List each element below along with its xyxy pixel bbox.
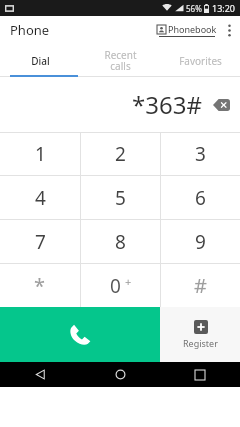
button[interactable]: 0 <box>81 264 160 307</box>
staticText: 4 <box>35 185 46 211</box>
button[interactable]: Home <box>80 362 160 387</box>
staticText: # <box>194 272 207 299</box>
staticText: 0 <box>110 273 121 299</box>
staticText: 7 <box>35 229 46 255</box>
staticText: 56% <box>186 3 202 14</box>
button[interactable]: Backspace <box>210 94 232 116</box>
button[interactable]: 9 <box>161 220 240 263</box>
button[interactable]: Phonebook <box>157 23 217 37</box>
staticText: 9 <box>195 229 206 255</box>
staticText: * <box>34 272 46 299</box>
button[interactable]: 7 <box>0 220 80 263</box>
button[interactable]: 3 <box>161 133 240 175</box>
button[interactable]: 1 <box>0 133 80 175</box>
button[interactable]: Recent apps <box>160 362 240 387</box>
button[interactable]: 8 <box>81 220 160 263</box>
button[interactable]: More options <box>222 18 236 42</box>
staticText: 5 <box>115 185 126 211</box>
button[interactable]: # <box>161 264 240 307</box>
button[interactable]: 5 <box>81 176 160 219</box>
button[interactable]: Dial <box>0 44 80 77</box>
button[interactable]: 4 <box>0 176 80 219</box>
button[interactable]: Register <box>160 307 240 362</box>
staticText: 6 <box>195 185 206 211</box>
button[interactable]: Favorites <box>160 44 240 77</box>
staticText: Favorites <box>179 54 222 68</box>
staticText: Phone <box>10 21 50 39</box>
staticText: Dial <box>31 54 50 68</box>
button[interactable]: Back <box>0 362 80 387</box>
button[interactable]: Call <box>0 307 160 362</box>
staticText: 1 <box>35 141 46 167</box>
staticText: 3 <box>195 141 206 167</box>
button[interactable]: 6 <box>161 176 240 219</box>
staticText: 13:20 <box>212 2 236 14</box>
staticText: Recent calls <box>104 48 137 73</box>
staticText: 8 <box>115 229 126 255</box>
staticText: + <box>125 274 132 289</box>
staticText: Register <box>183 337 218 349</box>
button[interactable]: 2 <box>81 133 160 175</box>
staticText: *363# <box>132 88 202 121</box>
staticText: Phonebook <box>168 23 217 35</box>
staticText: 2 <box>115 141 126 167</box>
button[interactable]: * <box>0 264 80 307</box>
button[interactable]: Recent calls <box>80 44 160 77</box>
